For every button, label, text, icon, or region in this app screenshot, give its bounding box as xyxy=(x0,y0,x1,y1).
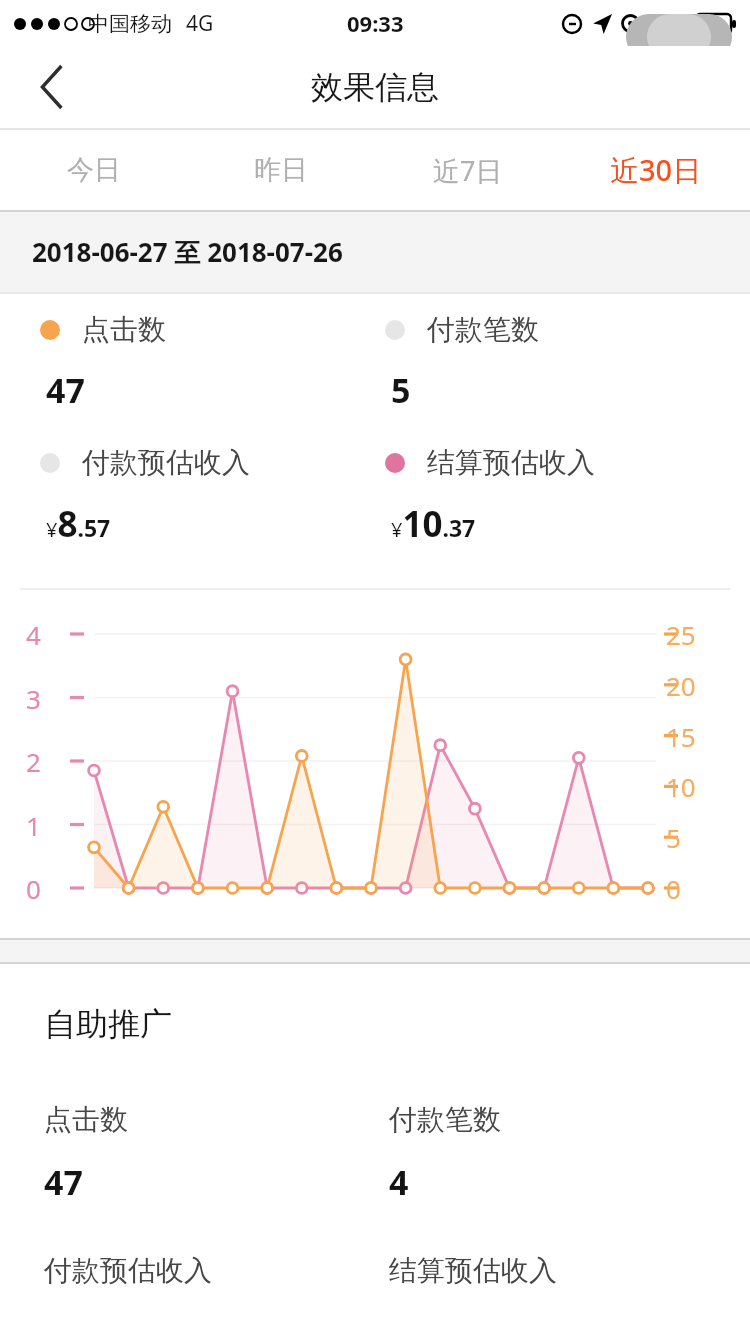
staticText: 结算预估收入 xyxy=(389,1253,557,1288)
staticText: 中国移动 xyxy=(88,11,172,37)
staticText: 点击数 xyxy=(44,1102,128,1137)
staticText: 3 xyxy=(26,681,41,716)
button[interactable]: Back xyxy=(22,56,84,118)
staticText: 昨日 xyxy=(254,153,308,187)
staticText: 近7日 xyxy=(433,152,503,189)
staticText: 付款预估收入 xyxy=(44,1253,212,1288)
button[interactable]: 近7日 xyxy=(374,130,562,210)
staticText: 效果信息 xyxy=(311,67,439,107)
button[interactable]: 付款预估收入 xyxy=(40,445,375,548)
staticText: 1 xyxy=(26,808,41,843)
staticText: 09:33 xyxy=(347,8,404,38)
staticText: 75% xyxy=(647,9,689,38)
staticText: 4 xyxy=(389,1159,409,1205)
staticText: 结算预估收入 xyxy=(427,445,595,480)
button[interactable]: 今日 xyxy=(0,130,187,210)
staticText: 自助推广 xyxy=(44,1004,172,1044)
staticText: 5 xyxy=(666,820,681,855)
staticText: 5 xyxy=(391,367,411,413)
staticText: 4G xyxy=(186,9,214,38)
button[interactable]: 付款笔数 xyxy=(385,312,750,413)
staticText: 付款笔数 xyxy=(389,1102,501,1137)
button[interactable]: 点击数 xyxy=(44,1102,375,1205)
staticText: 15 xyxy=(666,719,696,754)
staticText: 10 xyxy=(666,769,696,804)
staticText: 20 xyxy=(666,668,696,703)
button[interactable]: 结算预估收入 xyxy=(385,445,750,548)
staticText: 2018-06-27 至 2018-07-26 xyxy=(32,234,343,270)
staticText: 2 xyxy=(26,744,41,779)
staticText: 0 xyxy=(26,871,41,906)
staticText: 付款预估收入 xyxy=(82,445,250,480)
staticText: 今日 xyxy=(67,153,121,187)
staticText: 47 xyxy=(46,367,85,413)
button[interactable]: 点击数 xyxy=(40,312,375,413)
button[interactable]: 近30日 xyxy=(562,130,750,210)
staticText: 点击数 xyxy=(82,312,166,347)
staticText: 付款笔数 xyxy=(427,312,539,347)
staticText: 0 xyxy=(666,871,681,906)
staticText: 近30日 xyxy=(610,150,702,190)
staticText: 47 xyxy=(44,1159,83,1205)
staticText: 25 xyxy=(666,617,696,652)
button[interactable]: 昨日 xyxy=(187,130,374,210)
button[interactable]: 付款笔数 xyxy=(389,1102,750,1205)
staticText: 4 xyxy=(26,617,41,652)
staticText: ¥8.57 xyxy=(46,500,111,548)
staticText: ¥10.37 xyxy=(391,500,476,548)
